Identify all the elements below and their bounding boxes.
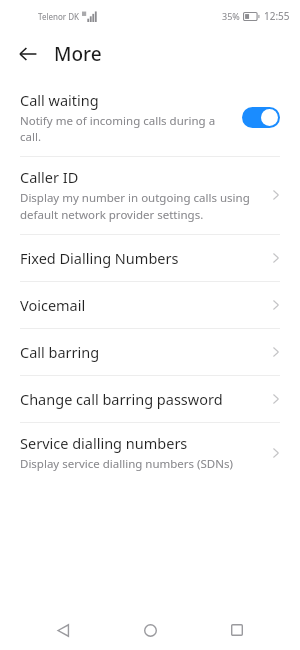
- button[interactable]: Home: [126, 610, 174, 650]
- button[interactable]: Call waiting toggle: [242, 107, 280, 128]
- staticText: Call barring: [20, 342, 100, 362]
- staticText: 35%: [222, 10, 240, 22]
- staticText: 12:55: [264, 9, 290, 23]
- staticText: Notify me of incoming calls during a cal…: [20, 113, 234, 145]
- staticText: More: [54, 41, 102, 67]
- staticText: Display service dialling numbers (SDNs): [20, 456, 233, 472]
- button[interactable]: Recent apps: [213, 610, 261, 650]
- button[interactable]: Call waiting: [0, 80, 300, 156]
- button[interactable]: Service dialling numbers: [0, 423, 300, 483]
- staticText: Call waiting: [20, 90, 99, 110]
- staticText: default network provider settings.: [20, 207, 204, 223]
- staticText: Display my number in outgoing calls usin…: [20, 190, 250, 206]
- staticText: Telenor DK: [38, 11, 79, 22]
- button[interactable]: Call barring: [0, 329, 300, 375]
- staticText: Service dialling numbers: [20, 433, 188, 453]
- staticText: Caller ID: [20, 167, 79, 187]
- button[interactable]: Change call barring password: [0, 376, 300, 422]
- button[interactable]: Caller ID: [0, 157, 300, 234]
- button[interactable]: Back: [39, 610, 87, 650]
- button[interactable]: Voicemail: [0, 282, 300, 328]
- staticText: Change call barring password: [20, 389, 223, 409]
- button[interactable]: Fixed Dialling Numbers: [0, 235, 300, 281]
- staticText: Fixed Dialling Numbers: [20, 248, 179, 268]
- staticText: Voicemail: [20, 295, 86, 315]
- button[interactable]: Back: [10, 36, 46, 72]
